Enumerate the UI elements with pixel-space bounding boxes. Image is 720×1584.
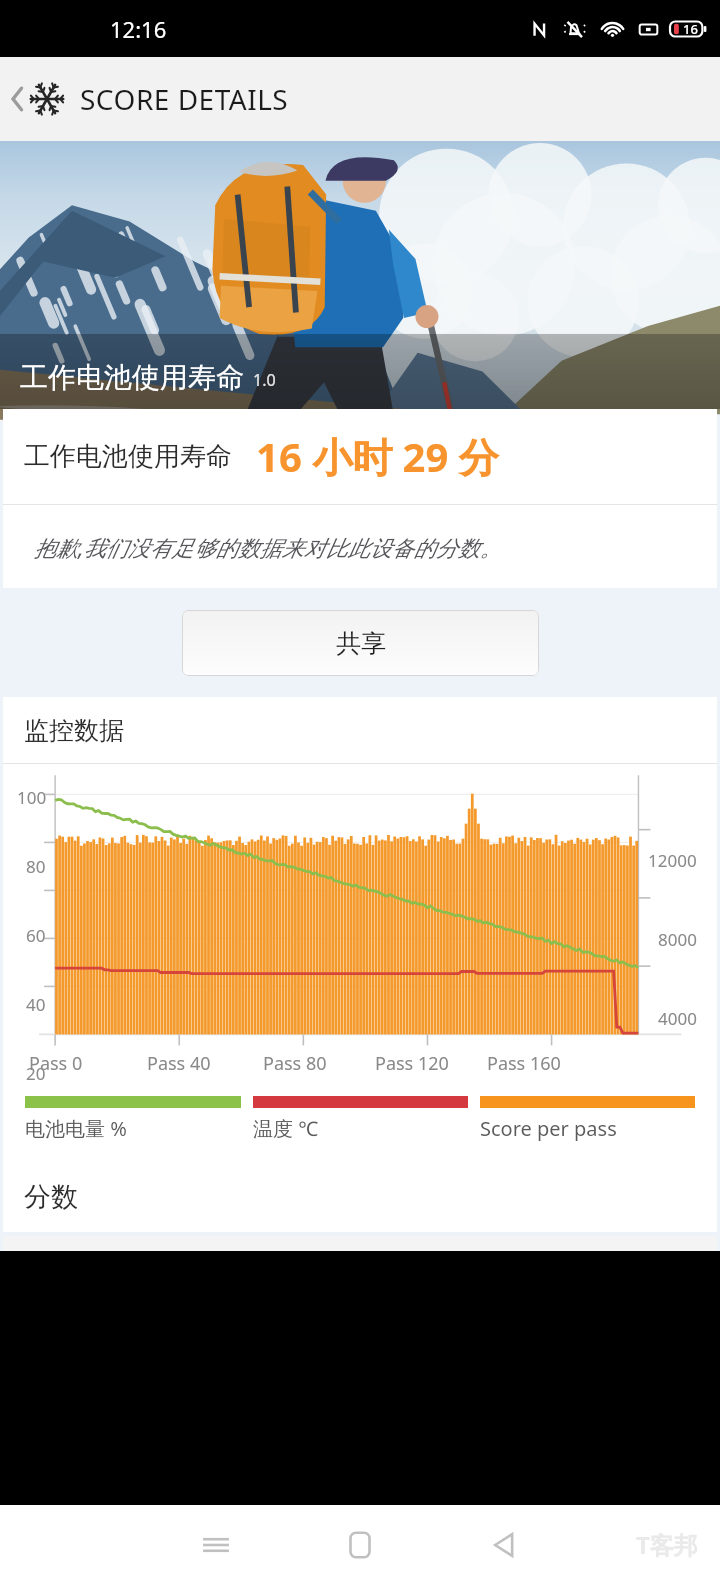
staticText: 60 xyxy=(26,924,46,947)
staticText: 20 xyxy=(26,1062,46,1084)
staticText: Pass 0 xyxy=(29,1051,83,1076)
button[interactable]: 工作电池使用寿命 xyxy=(0,141,720,409)
staticText: 16 小时 29 分 xyxy=(256,429,499,484)
button[interactable]: Back xyxy=(432,1505,576,1584)
staticText: 分数 xyxy=(24,1180,78,1214)
staticText: 工作电池使用寿命 xyxy=(20,360,244,395)
button[interactable]: 温度 ℃ xyxy=(253,1096,468,1142)
staticText: 监控数据 xyxy=(24,715,124,746)
staticText: 电池电量 % xyxy=(25,1115,127,1142)
staticText: Score per pass xyxy=(480,1115,617,1142)
button[interactable]: 电池电量 % xyxy=(25,1096,241,1142)
staticText: 40 xyxy=(26,993,46,1016)
staticText: 抱歉,我们没有足够的数据来对比此设备的分数。 xyxy=(34,532,502,562)
staticText: 8000 xyxy=(658,928,697,951)
staticText: Pass 120 xyxy=(375,1051,449,1076)
staticText: 工作电池使用寿命 xyxy=(24,440,232,473)
staticText: Pass 80 xyxy=(263,1051,327,1076)
staticText: SCORE DETAILS xyxy=(80,80,289,118)
button[interactable]: Home xyxy=(288,1505,432,1584)
button[interactable]: 抱歉,我们没有足够的数据来对比此设备的分数。 xyxy=(3,505,717,588)
staticText: 12000 xyxy=(648,849,697,872)
staticText: T客邦 xyxy=(636,1528,698,1561)
staticText: 温度 ℃ xyxy=(253,1115,319,1142)
button[interactable]: Recents xyxy=(144,1505,288,1584)
button[interactable]: 监控数据 xyxy=(3,697,717,763)
button[interactable]: 工作电池使用寿命 xyxy=(3,409,717,504)
staticText: 16 xyxy=(683,20,698,38)
staticText: 80 xyxy=(26,855,46,878)
button[interactable]: 分数 xyxy=(3,1162,717,1232)
button[interactable]: 共享 xyxy=(182,610,539,676)
button[interactable]: Score per pass xyxy=(480,1096,695,1142)
staticText: 12:16 xyxy=(110,14,167,44)
button[interactable]: Back xyxy=(0,57,69,141)
staticText: 4000 xyxy=(658,1007,697,1030)
staticText: 共享 xyxy=(336,628,386,659)
staticText: Pass 160 xyxy=(487,1051,561,1076)
staticText: 100 xyxy=(17,786,47,809)
staticText: 1.0 xyxy=(253,369,276,391)
staticText: Pass 40 xyxy=(147,1051,211,1076)
